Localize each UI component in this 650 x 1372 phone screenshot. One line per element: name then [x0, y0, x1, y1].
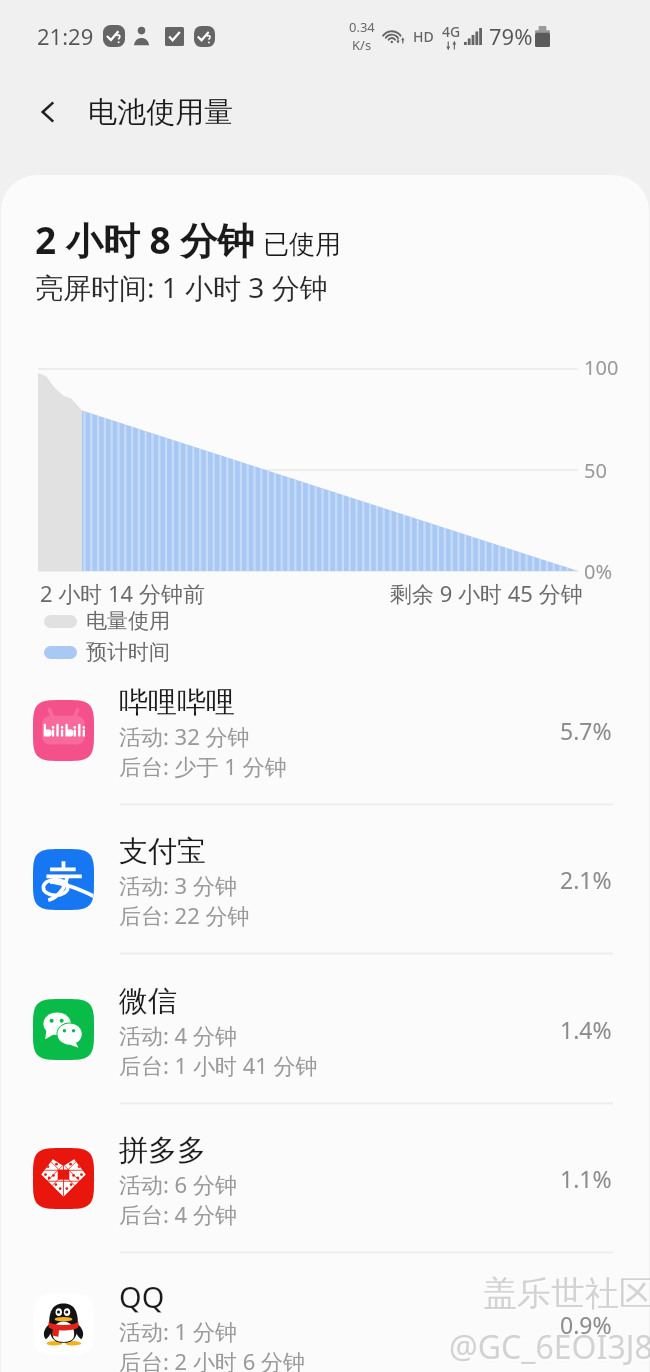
staticText: 79%: [489, 21, 533, 51]
staticText: 盖乐世社区: [483, 1272, 650, 1315]
staticText: 2.1%: [560, 864, 612, 895]
staticText: 0.9%: [560, 1309, 612, 1340]
staticText: QQ: [119, 1277, 165, 1316]
staticText: 100: [584, 354, 619, 381]
button[interactable]: 哔哩哔哩: [1, 655, 649, 805]
staticText: 电量使用: [86, 608, 170, 634]
staticText: 后台: 4 分钟: [119, 1199, 237, 1229]
staticText: 1.4%: [560, 1014, 612, 1045]
staticText: 5.7%: [560, 715, 612, 746]
staticText: K/s: [352, 36, 372, 54]
staticText: 活动: 32 分钟: [119, 721, 250, 751]
staticText: HD: [413, 27, 434, 46]
staticText: 已使用: [263, 228, 341, 261]
staticText: 亮屏时间: 1 小时 3 分钟: [35, 268, 328, 306]
button[interactable]: 支付宝: [1, 804, 649, 954]
staticText: 拼多多: [119, 1132, 206, 1169]
staticText: 0%: [584, 558, 613, 585]
staticText: @GC_6EOI3J8: [449, 1325, 650, 1369]
staticText: 4G: [442, 22, 461, 41]
staticText: 盖乐世社区: [485, 1274, 650, 1317]
staticText: @GC_6EOI3J8: [451, 1327, 650, 1371]
button[interactable]: 拼多多: [1, 1103, 649, 1253]
staticText: 活动: 3 分钟: [119, 870, 237, 900]
staticText: 后台: 少于 1 分钟: [119, 751, 287, 781]
staticText: 2 小时 8 分钟: [35, 214, 255, 265]
button[interactable]: 微信: [1, 954, 649, 1104]
button[interactable]: QQ: [1, 1249, 649, 1372]
staticText: 哔哩哔哩: [119, 684, 235, 721]
staticText: 活动: 4 分钟: [119, 1020, 237, 1050]
staticText: 2 小时 14 分钟前: [40, 578, 205, 608]
staticText: 后台: 22 分钟: [119, 900, 250, 930]
staticText: 后台: 2 小时 6 分钟: [119, 1346, 305, 1372]
staticText: 微信: [119, 983, 177, 1020]
staticText: 50: [584, 457, 607, 484]
staticText: 后台: 1 小时 41 分钟: [119, 1050, 318, 1080]
staticText: 0.34: [349, 18, 375, 36]
staticText: 电池使用量: [88, 94, 233, 131]
staticText: 1.1%: [560, 1163, 612, 1194]
staticText: 活动: 6 分钟: [119, 1169, 237, 1199]
staticText: 21:29: [37, 21, 94, 51]
staticText: 剩余 9 小时 45 分钟: [390, 578, 583, 608]
button[interactable]: Back: [26, 90, 70, 134]
staticText: 活动: 1 分钟: [119, 1316, 237, 1346]
staticText: 预计时间: [86, 639, 170, 665]
staticText: 支付宝: [119, 833, 206, 870]
